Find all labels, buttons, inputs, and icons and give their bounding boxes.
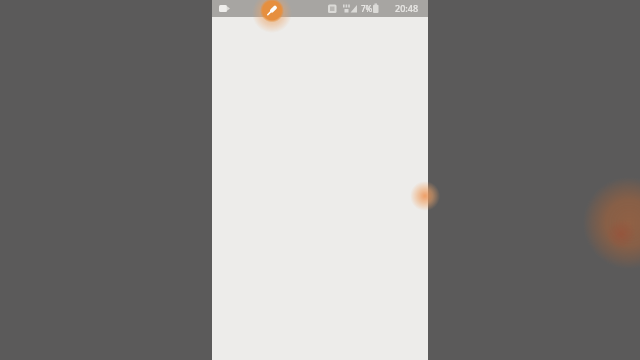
staticText: 7% [361, 3, 373, 14]
staticText: 20:48 [395, 2, 419, 14]
